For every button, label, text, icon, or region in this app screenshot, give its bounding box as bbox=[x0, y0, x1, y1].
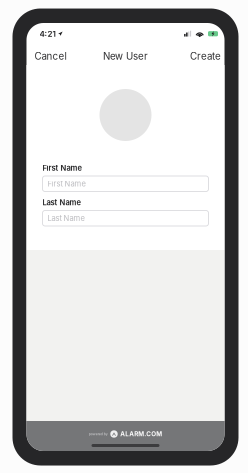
staticText: Create bbox=[190, 50, 221, 62]
staticText: Cancel bbox=[34, 50, 66, 62]
staticText: Last Name bbox=[47, 214, 84, 223]
button[interactable]: Cancel bbox=[26, 45, 74, 67]
staticText: 4:21 bbox=[39, 29, 55, 39]
staticText: First Name bbox=[47, 179, 85, 188]
button[interactable]: Create bbox=[182, 45, 224, 67]
button[interactable]: First Name bbox=[42, 176, 208, 191]
button[interactable]: Add profile photo bbox=[99, 89, 151, 141]
staticText: First Name bbox=[42, 163, 81, 173]
staticText: ALARM.COM bbox=[120, 430, 162, 438]
staticText: Last Name bbox=[42, 198, 80, 207]
staticText: powered by bbox=[89, 432, 108, 436]
staticText: New User bbox=[103, 50, 148, 62]
button[interactable]: Last Name bbox=[42, 210, 208, 226]
